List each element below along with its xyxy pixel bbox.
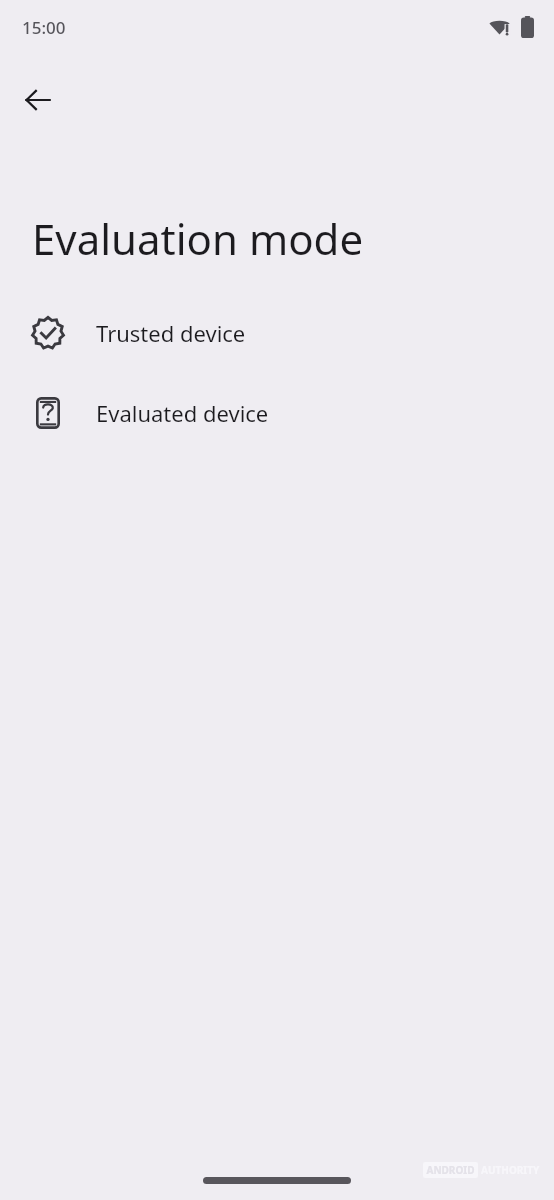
staticText: ANDROID — [426, 1163, 475, 1177]
staticText: 15:00 — [22, 16, 66, 39]
staticText: AUTHORITY — [481, 1163, 540, 1177]
button[interactable]: Evaluated device — [0, 391, 554, 435]
button[interactable]: Back — [10, 72, 66, 128]
staticText: Evaluated device — [96, 398, 269, 428]
button[interactable]: Trusted device — [0, 311, 554, 355]
staticText: Trusted device — [96, 318, 246, 348]
staticText: Evaluation mode — [32, 210, 364, 267]
